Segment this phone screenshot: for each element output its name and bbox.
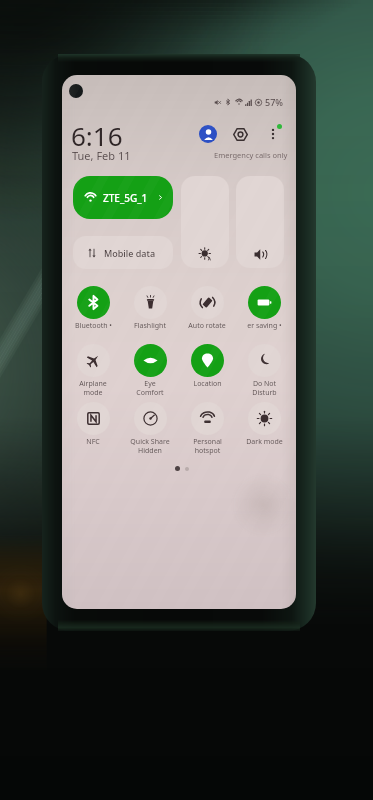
staticText: Flashlight [134, 321, 166, 331]
staticText: 6:16 [71, 118, 123, 153]
button[interactable]: More options [264, 125, 281, 142]
button[interactable]: Brightness [181, 176, 229, 268]
staticText: Dark mode [246, 437, 283, 447]
staticText: Tue, Feb 11 [72, 148, 131, 163]
button[interactable]: Do Not Disturb [236, 344, 292, 397]
button[interactable]: ZTE_5G_1 [73, 176, 173, 219]
staticText: Do Not Disturb [252, 379, 277, 397]
staticText: er saving • [247, 321, 282, 331]
button[interactable]: Location [179, 344, 235, 389]
staticText: Emergency calls only [214, 150, 288, 160]
staticText: 57% [265, 96, 283, 108]
button[interactable]: Settings [231, 125, 249, 143]
button[interactable]: User account [199, 125, 217, 143]
button[interactable]: NFC [65, 402, 121, 447]
button[interactable]: Dark mode [236, 402, 292, 447]
staticText: Location [193, 379, 222, 389]
staticText: Eye Comfort [136, 379, 164, 397]
button[interactable]: Quick Share Hidden [122, 402, 178, 455]
button[interactable]: Personal hotspot [179, 402, 235, 455]
staticText: Personal hotspot [193, 437, 222, 455]
staticText: Bluetooth • [75, 321, 112, 331]
staticText: ZTE_5G_1 [103, 191, 148, 205]
button[interactable]: Mobile data [73, 236, 173, 269]
button[interactable]: Bluetooth • [65, 286, 121, 331]
button[interactable]: Eye Comfort [122, 344, 178, 397]
staticText: Mobile data [104, 247, 156, 259]
staticText: NFC [86, 437, 100, 447]
staticText: Airplane mode [79, 379, 107, 397]
button[interactable]: Auto rotate [179, 286, 235, 331]
button[interactable]: Airplane mode [65, 344, 121, 397]
button[interactable]: er saving • [236, 286, 292, 331]
staticText: Quick Share Hidden [130, 437, 170, 455]
staticText: Auto rotate [188, 321, 226, 331]
button[interactable]: Volume [236, 176, 284, 268]
button[interactable]: Flashlight [122, 286, 178, 331]
